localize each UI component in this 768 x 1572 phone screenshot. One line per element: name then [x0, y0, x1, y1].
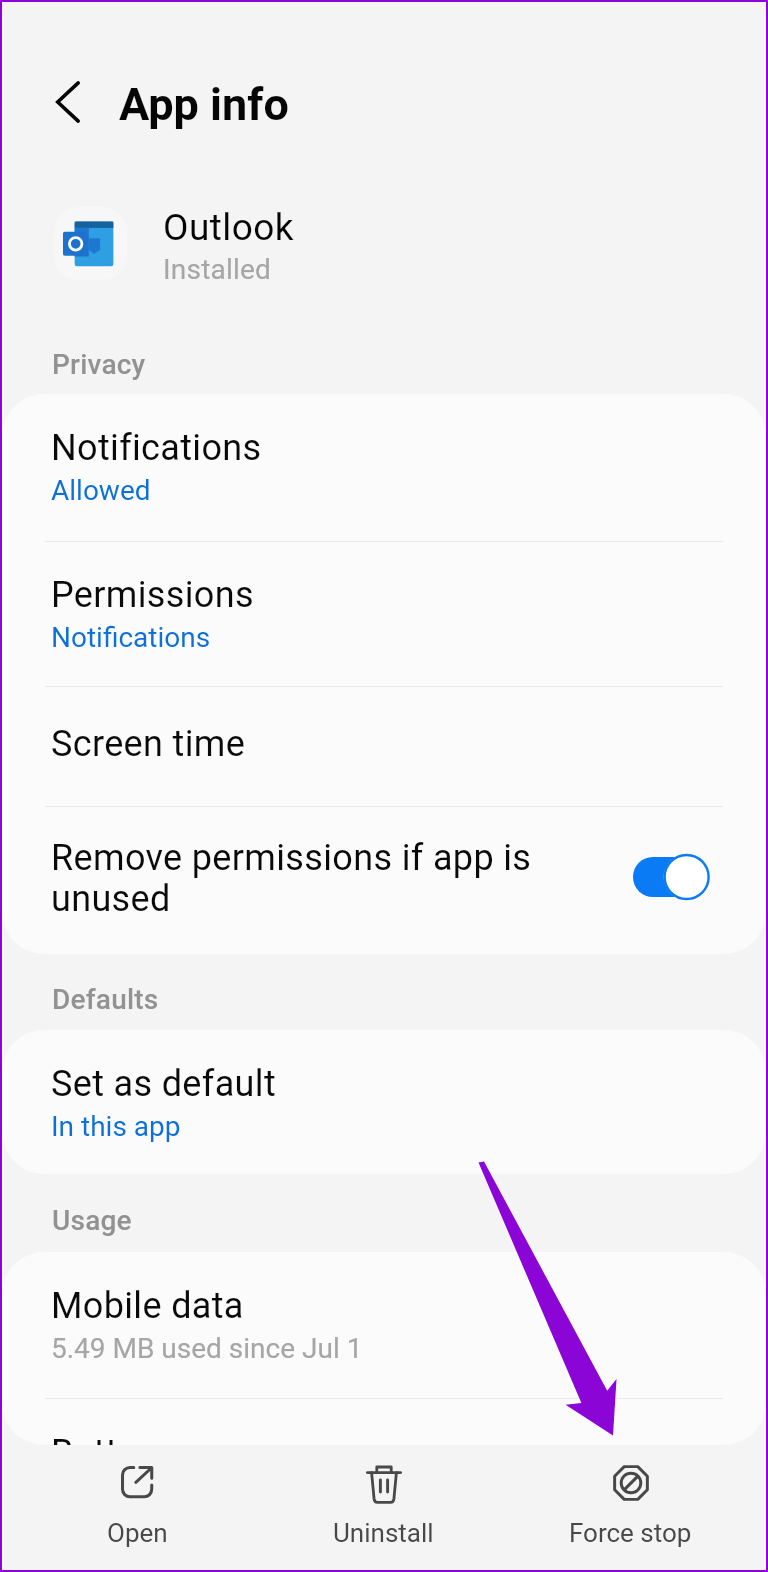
staticText: Screen time — [51, 723, 246, 765]
button[interactable]: Remove permissions if app is unused — [2, 806, 766, 954]
button[interactable]: Mobile data — [2, 1252, 766, 1398]
staticText: Uninstall — [333, 1518, 434, 1548]
staticText: Set as default — [51, 1063, 277, 1105]
staticText: Permissions — [51, 574, 254, 616]
button[interactable]: Uninstall app — [260, 1445, 507, 1570]
button[interactable]: Notifications — [2, 394, 766, 541]
staticText: Notifications — [51, 621, 211, 654]
staticText: Remove permissions if app is unused — [51, 837, 532, 920]
staticText: In this app — [51, 1110, 181, 1143]
staticText: Battery — [51, 1432, 168, 1445]
staticText: Notifications — [51, 427, 262, 469]
staticText: Outlook — [163, 206, 295, 249]
staticText: Allowed — [51, 474, 151, 507]
staticText: Privacy — [52, 348, 146, 381]
staticText: Mobile data — [51, 1285, 244, 1327]
staticText: 5.49 MB used since Jul 1 — [51, 1332, 363, 1365]
button[interactable]: Screen time — [2, 686, 766, 806]
staticText: Defaults — [52, 983, 159, 1016]
button[interactable]: Set as default — [2, 1030, 766, 1174]
button[interactable]: Permissions — [2, 541, 766, 686]
button[interactable]: Open app — [14, 1445, 260, 1570]
staticText: Usage — [52, 1204, 132, 1237]
staticText: Installed — [163, 253, 271, 286]
button[interactable]: Battery — [2, 1398, 766, 1445]
button[interactable]: Navigate up — [36, 69, 102, 135]
staticText: Open — [107, 1518, 168, 1548]
staticText: Force stop — [569, 1518, 692, 1548]
staticText: App info — [119, 78, 289, 131]
button[interactable]: Force stop app — [507, 1445, 754, 1570]
